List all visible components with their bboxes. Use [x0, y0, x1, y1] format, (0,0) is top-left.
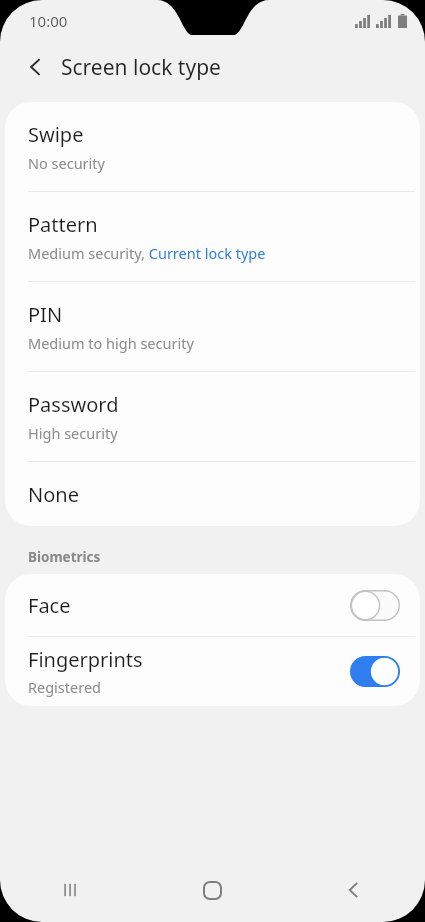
staticText: 10:00 — [29, 11, 68, 31]
button[interactable]: Back — [283, 858, 425, 922]
button[interactable]: Pattern — [5, 192, 420, 281]
button[interactable]: Recents — [0, 858, 141, 922]
staticText: PIN — [28, 301, 63, 328]
staticText: High security — [28, 423, 118, 443]
staticText: Screen lock type — [61, 53, 221, 82]
staticText: Swipe — [28, 121, 84, 148]
staticText: Face — [28, 592, 71, 619]
staticText: Medium security, Current lock type — [28, 243, 266, 263]
button[interactable]: Back — [16, 47, 56, 87]
button[interactable]: PIN — [5, 282, 420, 371]
staticText: Password — [28, 391, 119, 418]
staticText: Medium to high security — [28, 333, 194, 353]
staticText: None — [28, 481, 79, 508]
button[interactable]: Home — [141, 858, 283, 922]
button[interactable]: On — [350, 656, 400, 687]
button[interactable]: None — [5, 462, 420, 526]
button[interactable]: Password — [5, 372, 420, 461]
button[interactable]: Fingerprints — [5, 637, 420, 706]
button[interactable]: Off — [350, 590, 400, 621]
staticText: Fingerprints — [28, 646, 143, 673]
staticText: Registered — [28, 677, 102, 697]
button[interactable]: Face — [5, 574, 420, 636]
staticText: No security — [28, 153, 105, 173]
staticText: Biometrics — [28, 548, 101, 566]
staticText: Pattern — [28, 211, 98, 238]
button[interactable]: Swipe — [5, 102, 420, 191]
